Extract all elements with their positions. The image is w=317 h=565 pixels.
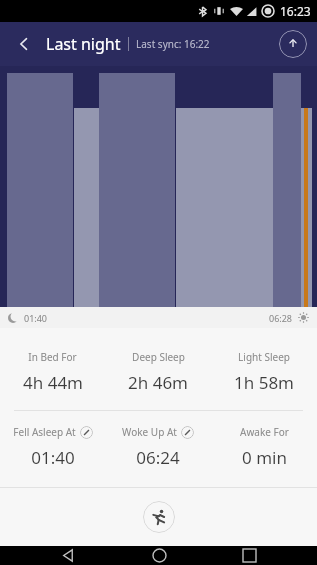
button[interactable]: Fell Asleep At <box>0 425 105 469</box>
staticText: In Bed For <box>28 350 77 364</box>
button[interactable]: Share <box>279 30 307 58</box>
staticText: Woke Up At <box>122 425 177 439</box>
button[interactable]: Recent apps <box>227 546 271 565</box>
staticText: 1h 58m <box>234 371 294 394</box>
staticText: Last sync: 16:22 <box>136 37 210 51</box>
staticText: 0 min <box>242 446 287 469</box>
staticText: 01:40 <box>31 446 75 469</box>
button[interactable]: Activity <box>143 501 175 533</box>
staticText: Fell Asleep At <box>13 425 76 439</box>
staticText: 06:28 <box>269 312 293 324</box>
staticText: Last night <box>46 33 121 55</box>
button[interactable]: Home <box>137 546 181 565</box>
other: Edit Fell Asleep At <box>80 426 93 439</box>
staticText: Awake For <box>240 425 289 439</box>
button[interactable]: Woke Up At <box>105 425 211 469</box>
other: Edit Woke Up At <box>181 426 194 439</box>
staticText: 16:23 <box>280 3 311 19</box>
button[interactable]: Back <box>46 546 90 565</box>
staticText: 06:24 <box>136 446 180 469</box>
button[interactable]: Back <box>10 30 38 58</box>
staticText: Light Sleep <box>238 350 290 364</box>
staticText: 2h 46m <box>128 371 188 394</box>
staticText: Deep Sleep <box>132 350 185 364</box>
staticText: 4h 44m <box>23 371 83 394</box>
staticText: 01:40 <box>24 312 48 324</box>
